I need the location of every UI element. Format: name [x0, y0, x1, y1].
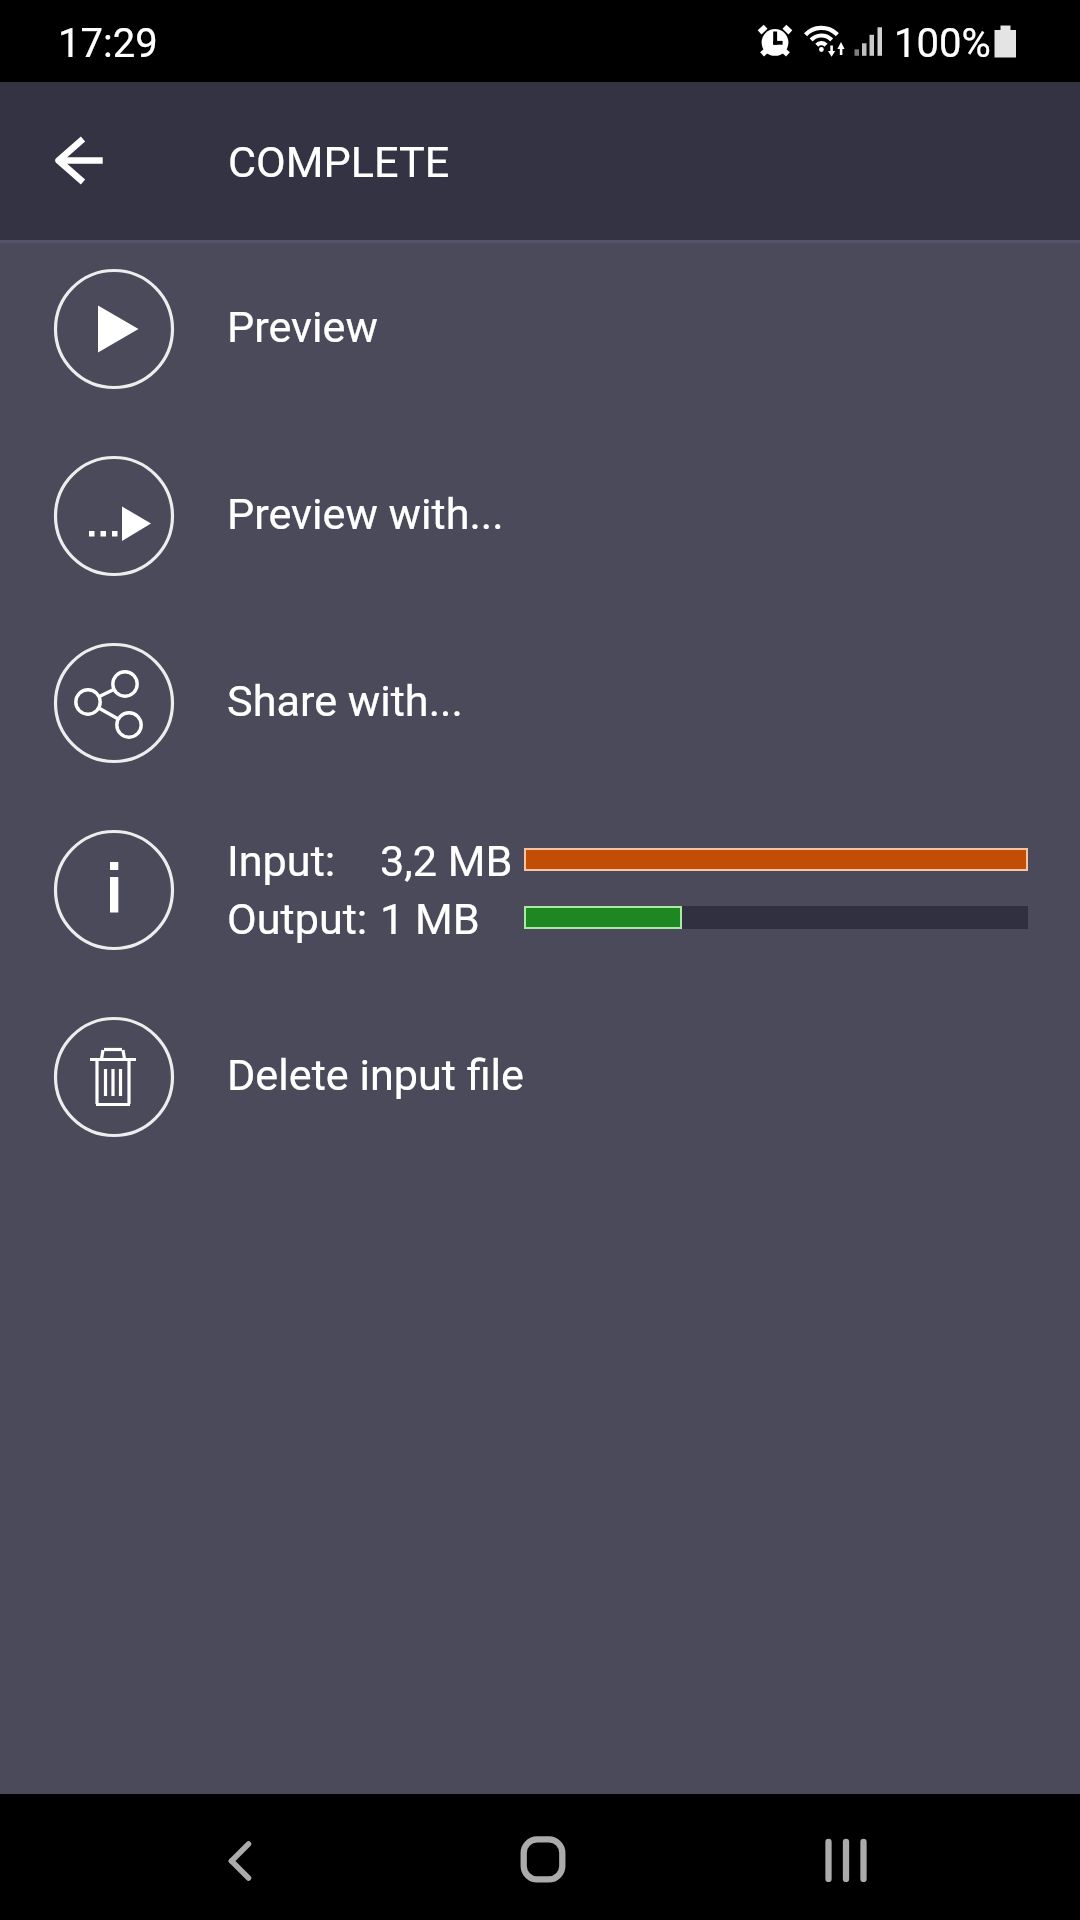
button[interactable]: Recent apps	[786, 1794, 906, 1920]
button[interactable]: Preview	[0, 235, 1080, 422]
staticText: Preview	[227, 302, 378, 353]
staticText: Share with...	[227, 676, 463, 727]
staticText: Input:	[227, 836, 336, 887]
staticText: Output:	[227, 894, 368, 945]
staticText: 1 MB	[380, 894, 480, 945]
button[interactable]: Preview with...	[0, 422, 1080, 609]
button[interactable]: Back	[180, 1794, 300, 1920]
staticText: Delete input file	[227, 1050, 524, 1101]
staticText: 17:29	[58, 20, 158, 67]
button[interactable]: Navigate up	[29, 111, 129, 211]
button[interactable]: Share with...	[0, 609, 1080, 796]
button[interactable]: Home	[483, 1794, 603, 1920]
staticText: COMPLETE	[228, 137, 450, 188]
staticText: 100%	[894, 20, 991, 67]
button[interactable]: Input:	[0, 796, 1080, 983]
button[interactable]: Delete input file	[0, 983, 1080, 1170]
staticText: Preview with...	[227, 489, 504, 540]
staticText: 3,2 MB	[380, 836, 513, 887]
